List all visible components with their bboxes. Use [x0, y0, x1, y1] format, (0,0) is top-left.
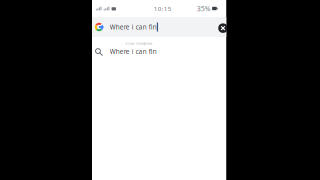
staticText: 10:15 — [154, 4, 172, 13]
staticText: Where i can fin — [110, 23, 157, 31]
button[interactable]: Clear search — [218, 23, 228, 33]
button[interactable]: Where i can fin — [91, 46, 226, 57]
staticText: 35% — [197, 4, 211, 13]
staticText: Where i can fin — [110, 47, 157, 56]
button[interactable]: Where i can fin — [91, 17, 226, 37]
staticText: этом телефоне — [125, 40, 152, 46]
